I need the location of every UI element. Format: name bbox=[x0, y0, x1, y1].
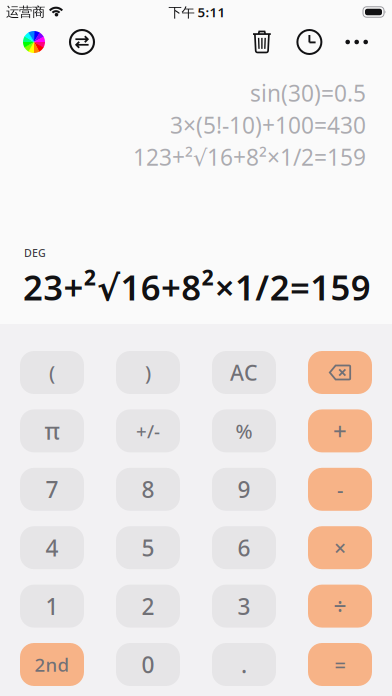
staticText: % bbox=[235, 418, 252, 444]
button[interactable]: ( bbox=[20, 351, 84, 394]
staticText: 23+²√16+8²×1/2=159 bbox=[23, 264, 371, 310]
staticText: = bbox=[334, 651, 345, 678]
staticText: 6 bbox=[237, 533, 250, 563]
staticText: 下午 5:11 bbox=[168, 3, 225, 21]
staticText: 123+²√16+8²×1/2=159 bbox=[133, 142, 366, 172]
button[interactable]: 3 bbox=[212, 585, 276, 628]
button[interactable]: 1 bbox=[20, 585, 84, 628]
staticText: AC bbox=[230, 358, 258, 387]
staticText: - bbox=[337, 476, 343, 503]
staticText: 2nd bbox=[34, 652, 69, 677]
staticText: 1 bbox=[45, 591, 58, 621]
staticText: sin(30)=0.5 bbox=[250, 78, 366, 108]
staticText: 3 bbox=[237, 591, 250, 621]
button[interactable]: 9 bbox=[212, 468, 276, 511]
button[interactable]: History bbox=[297, 30, 321, 54]
staticText: ÷ bbox=[333, 591, 346, 621]
button[interactable]: Theme bbox=[23, 31, 45, 53]
staticText: ) bbox=[145, 359, 151, 386]
button[interactable]: 4 bbox=[20, 526, 84, 569]
button[interactable]: = bbox=[308, 643, 372, 686]
staticText: 5 bbox=[141, 533, 154, 563]
staticText: 9 bbox=[237, 474, 250, 504]
button[interactable]: 7 bbox=[20, 468, 84, 511]
button[interactable]: More bbox=[345, 30, 368, 54]
button[interactable]: % bbox=[212, 409, 276, 452]
staticText: . bbox=[241, 649, 247, 679]
button[interactable]: Clear history bbox=[252, 30, 271, 54]
button[interactable]: 2 bbox=[116, 585, 180, 628]
staticText: 3×(5!-10)+100=430 bbox=[170, 110, 366, 140]
button[interactable]: + bbox=[308, 409, 372, 452]
staticText: 0 bbox=[141, 649, 154, 679]
staticText: 2 bbox=[141, 591, 154, 621]
button[interactable]: × bbox=[308, 526, 372, 569]
button[interactable]: 8 bbox=[116, 468, 180, 511]
staticText: DEG bbox=[24, 246, 46, 260]
staticText: 4 bbox=[45, 533, 58, 563]
staticText: π bbox=[44, 416, 59, 446]
button[interactable]: 0 bbox=[116, 643, 180, 686]
staticText: +/- bbox=[136, 418, 160, 443]
button[interactable]: ) bbox=[116, 351, 180, 394]
button[interactable]: . bbox=[212, 643, 276, 686]
staticText: 8 bbox=[141, 474, 154, 504]
button[interactable]: 6 bbox=[212, 526, 276, 569]
staticText: ( bbox=[49, 359, 55, 386]
staticText: 7 bbox=[45, 474, 58, 504]
staticText: + bbox=[333, 415, 347, 447]
button[interactable]: 2nd bbox=[20, 643, 84, 686]
button[interactable]: +/- bbox=[116, 409, 180, 452]
button[interactable]: π bbox=[20, 409, 84, 452]
staticText: 运营商 bbox=[6, 4, 45, 20]
button[interactable]: 5 bbox=[116, 526, 180, 569]
staticText: × bbox=[334, 533, 346, 562]
button[interactable]: ÷ bbox=[308, 585, 372, 628]
button[interactable]: Convert bbox=[70, 30, 94, 54]
button[interactable]: - bbox=[308, 468, 372, 511]
button[interactable]: AC bbox=[212, 351, 276, 394]
button[interactable]: Delete bbox=[308, 351, 372, 394]
